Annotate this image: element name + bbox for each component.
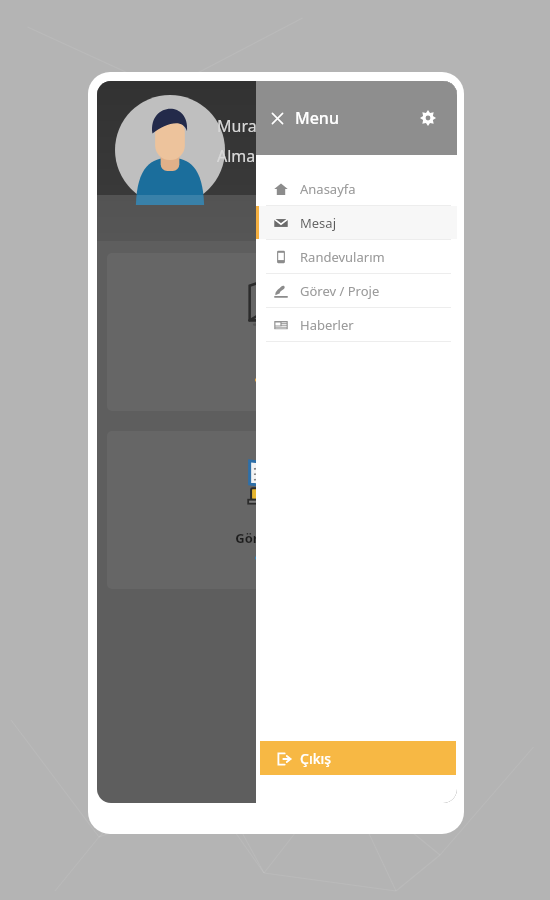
staticText: Alma — [217, 145, 256, 167]
staticText: Anasayfa — [300, 180, 356, 198]
staticText: Çıkış — [300, 749, 332, 768]
button[interactable]: Menu — [270, 107, 339, 129]
staticText: Haberler — [300, 316, 354, 334]
button[interactable]: Haberler — [256, 308, 457, 341]
button[interactable]: Görev / Proje — [107, 431, 447, 589]
button[interactable]: Çıkış — [260, 741, 456, 775]
button[interactable]: Anasayfa — [256, 172, 457, 205]
button[interactable]: Settings — [415, 105, 441, 131]
staticText: Görev / Proje — [300, 282, 380, 300]
staticText: Menu — [295, 107, 339, 129]
staticText: Görev / Proje — [235, 529, 319, 547]
button[interactable]: Randevularım — [256, 240, 457, 273]
button[interactable]: Mesaj — [107, 253, 447, 411]
staticText: Mesaj — [300, 214, 336, 232]
staticText: Randevularım — [300, 248, 385, 266]
button[interactable]: Görev / Proje — [256, 274, 457, 307]
staticText: Murat — [217, 115, 263, 137]
button[interactable]: Mesaj — [256, 206, 457, 239]
